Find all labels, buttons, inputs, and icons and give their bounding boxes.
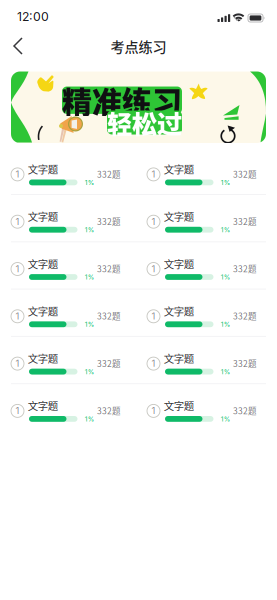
staticText: 332题	[97, 215, 121, 227]
staticText: 332题	[233, 357, 257, 369]
staticText: 1%	[85, 273, 95, 281]
staticText: 12:00	[17, 9, 49, 24]
staticText: 1	[151, 405, 155, 416]
staticText: 1	[151, 169, 155, 180]
button[interactable]: 1	[11, 352, 130, 376]
button[interactable]: 1	[11, 162, 130, 186]
staticText: 1%	[221, 368, 231, 376]
button[interactable]: 1	[147, 304, 266, 328]
staticText: 考点练习	[110, 36, 166, 56]
staticText: 1%	[221, 178, 231, 187]
staticText: 1	[151, 216, 155, 227]
staticText: 精准练习	[62, 78, 182, 122]
button[interactable]: Back	[0, 30, 36, 62]
staticText: 1	[15, 263, 19, 274]
staticText: 1	[151, 310, 155, 322]
staticText: 332题	[233, 168, 257, 180]
staticText: 1%	[85, 178, 95, 187]
staticText: 文字题	[164, 398, 194, 413]
staticText: 文字题	[28, 161, 58, 177]
staticText: 文字题	[164, 351, 194, 366]
staticText: 1%	[85, 368, 95, 376]
staticText: 1	[15, 405, 19, 416]
staticText: 文字题	[28, 256, 58, 271]
staticText: 文字题	[164, 161, 194, 177]
staticText: 332题	[97, 357, 121, 369]
staticText: 332题	[97, 262, 121, 275]
button[interactable]: 1	[147, 210, 266, 234]
button[interactable]: 1	[11, 399, 130, 423]
staticText: 文字题	[164, 303, 194, 318]
button[interactable]: 1	[11, 210, 130, 234]
staticText: 1	[151, 358, 155, 369]
staticText: 1%	[221, 320, 231, 328]
staticText: 文字题	[28, 209, 58, 224]
staticText: 文字题	[164, 256, 194, 271]
button[interactable]: 1	[11, 257, 130, 281]
staticText: 1	[15, 358, 19, 369]
staticText: 文字题	[28, 398, 58, 413]
staticText: 332题	[233, 310, 257, 322]
staticText: 1%	[85, 226, 95, 234]
staticText: 1	[151, 263, 155, 274]
staticText: 文字题	[28, 351, 58, 366]
staticText: 1%	[221, 273, 231, 281]
staticText: 1%	[85, 415, 95, 423]
button[interactable]: 1	[147, 352, 266, 376]
staticText: 1%	[221, 415, 231, 423]
button[interactable]: 1	[147, 257, 266, 281]
staticText: 332题	[233, 404, 257, 417]
staticText: 1	[15, 169, 19, 180]
staticText: 332题	[233, 215, 257, 227]
staticText: 1%	[221, 226, 231, 234]
staticText: 1	[15, 310, 19, 322]
staticText: 文字题	[28, 303, 58, 318]
staticText: 332题	[97, 168, 121, 180]
button[interactable]: 1	[11, 304, 130, 328]
button[interactable]: 1	[147, 399, 266, 423]
button[interactable]: 1	[147, 162, 266, 186]
staticText: 332题	[97, 404, 121, 417]
staticText: 1%	[85, 320, 95, 328]
staticText: 文字题	[164, 209, 194, 224]
staticText: 332题	[97, 310, 121, 322]
staticText: 1	[15, 216, 19, 227]
staticText: 轻松过	[107, 104, 182, 141]
staticText: 332题	[233, 262, 257, 275]
